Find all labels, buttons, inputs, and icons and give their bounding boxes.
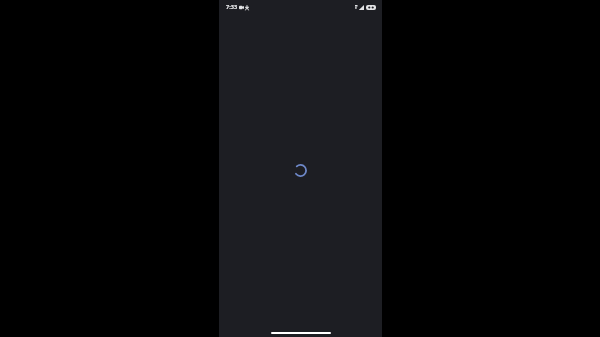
other: Battery	[366, 5, 376, 10]
other: Accessibility	[245, 5, 249, 10]
other: Loading	[294, 164, 307, 177]
other: Screen recording	[239, 5, 244, 10]
other: Mobile signal	[355, 5, 364, 10]
staticText: 7:33	[226, 3, 238, 11]
